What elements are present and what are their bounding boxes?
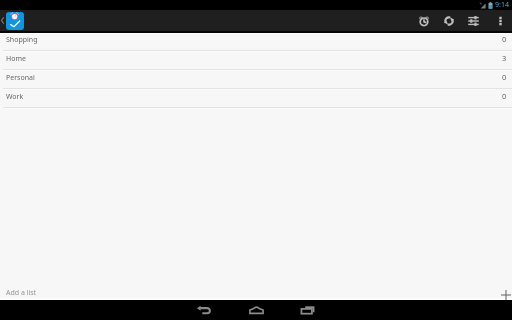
staticText: Home: [6, 54, 26, 64]
button[interactable]: Personal: [0, 71, 512, 90]
button[interactable]: Navigate up: [0, 10, 26, 31]
staticText: Shopping: [6, 35, 38, 45]
staticText: 9:14: [495, 0, 509, 10]
staticText: 3: [502, 53, 507, 63]
staticText: 0: [502, 91, 507, 101]
button[interactable]: Home: [240, 300, 272, 320]
button[interactable]: Add list: [490, 282, 512, 300]
staticText: Work: [6, 92, 24, 102]
button[interactable]: Settings: [461, 10, 486, 31]
button[interactable]: Back: [188, 300, 220, 320]
button[interactable]: Alarm: [411, 10, 436, 31]
button[interactable]: Home: [0, 52, 512, 71]
button[interactable]: Recents: [292, 300, 324, 320]
staticText: Add a list: [6, 288, 37, 298]
staticText: 0: [502, 72, 507, 82]
staticText: 0: [502, 34, 507, 44]
button[interactable]: Sync: [436, 10, 461, 31]
button[interactable]: Shopping: [0, 33, 512, 52]
button[interactable]: Add a list: [0, 282, 470, 300]
staticText: Personal: [6, 73, 35, 83]
button[interactable]: More options: [486, 10, 511, 31]
button[interactable]: Work: [0, 90, 512, 109]
